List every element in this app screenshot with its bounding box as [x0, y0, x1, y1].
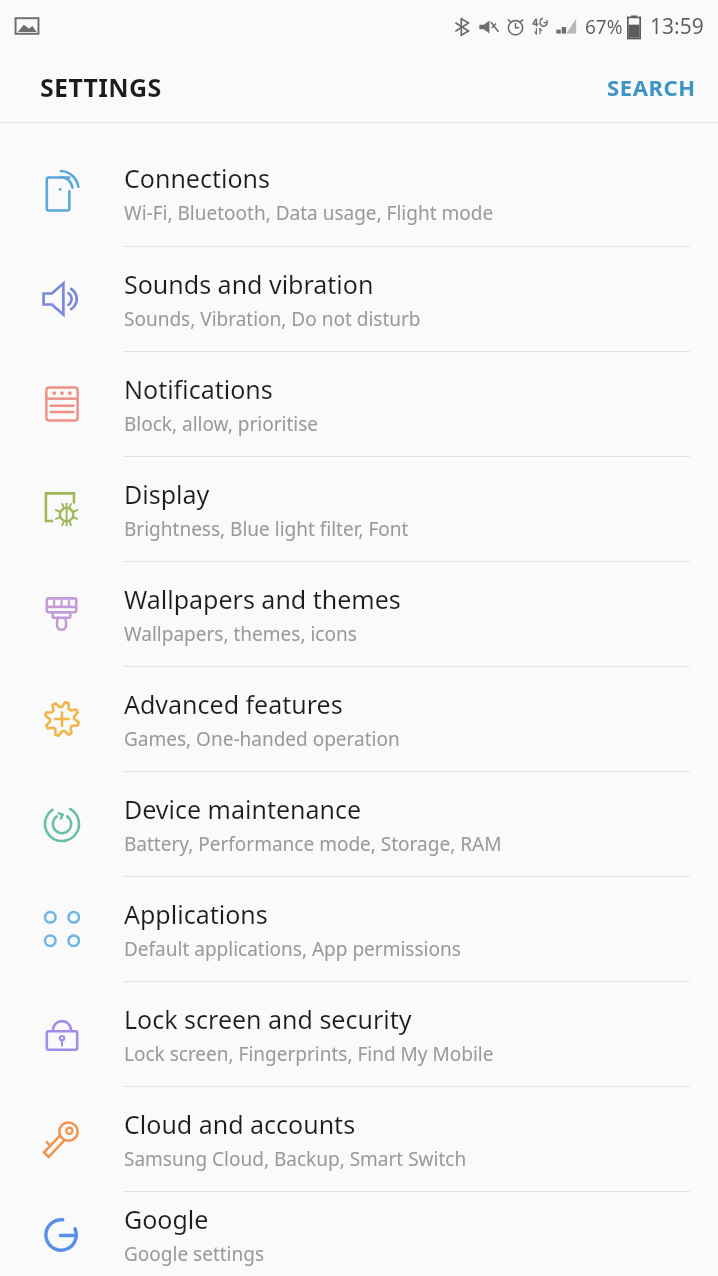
staticText: Brightness, Blue light filter, Font — [124, 516, 409, 542]
button[interactable]: Applications — [0, 876, 718, 981]
button[interactable]: Cloud and accounts — [0, 1086, 718, 1191]
staticText: Sounds, Vibration, Do not disturb — [124, 306, 421, 332]
staticText: Display — [124, 477, 210, 511]
button[interactable]: Wallpapers and themes — [0, 561, 718, 666]
staticText: Cloud and accounts — [124, 1107, 356, 1141]
button[interactable]: Google — [0, 1191, 718, 1276]
staticText: SETTINGS — [40, 70, 162, 104]
staticText: Google — [124, 1202, 209, 1236]
staticText: Samsung Cloud, Backup, Smart Switch — [124, 1146, 467, 1172]
button[interactable]: Advanced features — [0, 666, 718, 771]
button[interactable]: Sounds and vibration — [0, 246, 718, 351]
staticText: 67% — [585, 14, 623, 40]
staticText: Wallpapers, themes, icons — [124, 621, 357, 647]
staticText: Games, One-handed operation — [124, 726, 400, 752]
button[interactable]: Notifications — [0, 351, 718, 456]
button[interactable]: Connections — [0, 141, 718, 246]
staticText: Lock screen and security — [124, 1002, 412, 1036]
button[interactable]: Device maintenance — [0, 771, 718, 876]
button[interactable]: Lock screen and security — [0, 981, 718, 1086]
staticText: Device maintenance — [124, 792, 362, 826]
button[interactable]: Display — [0, 456, 718, 561]
staticText: Wallpapers and themes — [124, 582, 401, 616]
staticText: SEARCH — [607, 72, 696, 102]
staticText: Sounds and vibration — [124, 267, 374, 301]
button[interactable]: SEARCH — [585, 58, 718, 116]
staticText: Google settings — [124, 1241, 265, 1267]
staticText: Lock screen, Fingerprints, Find My Mobil… — [124, 1041, 494, 1067]
staticText: Applications — [124, 897, 268, 931]
staticText: Connections — [124, 161, 270, 195]
staticText: Notifications — [124, 372, 273, 406]
staticText: Advanced features — [124, 687, 343, 721]
staticText: Default applications, App permissions — [124, 936, 461, 962]
staticText: 13:59 — [650, 12, 704, 41]
staticText: Block, allow, prioritise — [124, 411, 319, 437]
staticText: Wi-Fi, Bluetooth, Data usage, Flight mod… — [124, 200, 494, 226]
staticText: Battery, Performance mode, Storage, RAM — [124, 831, 502, 857]
